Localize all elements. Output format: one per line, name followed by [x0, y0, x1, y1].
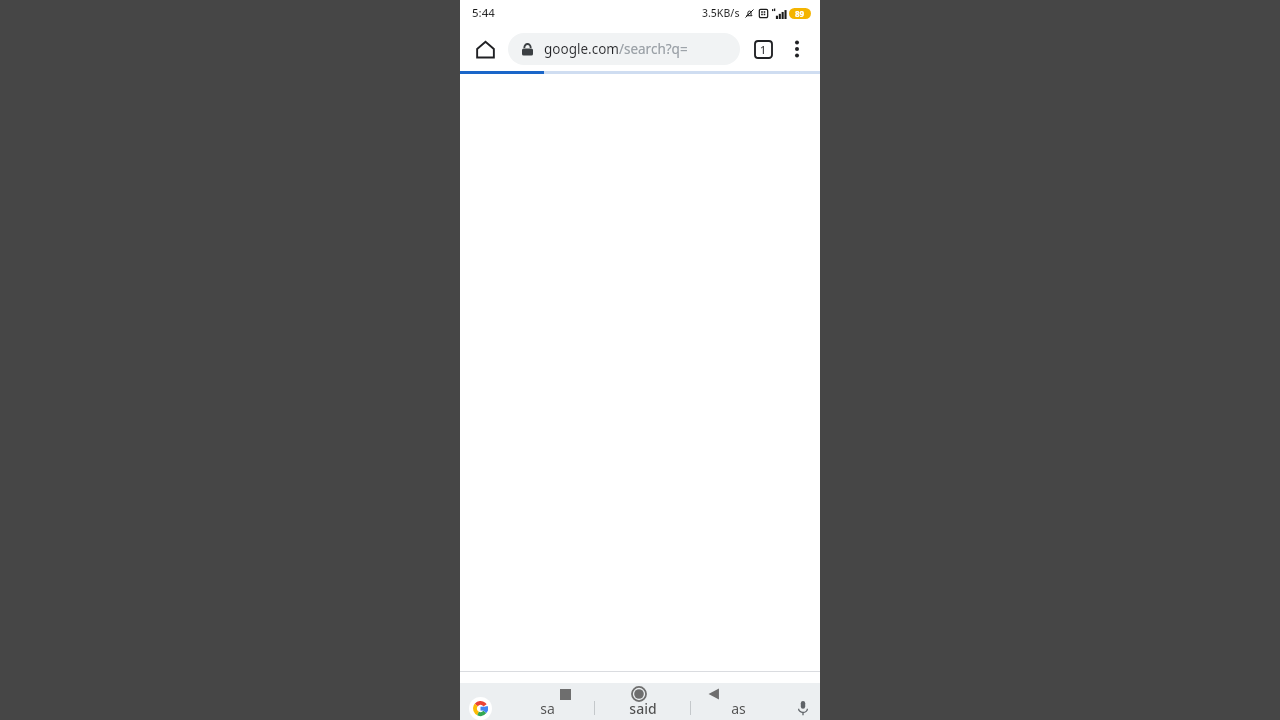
- button[interactable]: Home: [626, 683, 652, 705]
- button[interactable]: Home: [466, 30, 504, 68]
- button[interactable]: as: [691, 696, 786, 720]
- button[interactable]: google.com/search?q=: [508, 33, 740, 65]
- staticText: 3.5KB/s: [702, 6, 740, 20]
- staticText: as: [731, 699, 746, 718]
- staticText: said: [629, 699, 657, 718]
- button[interactable]: Back: [700, 683, 726, 705]
- staticText: 89: [795, 8, 805, 19]
- button[interactable]: Tabs: 1: [746, 32, 780, 66]
- staticText: 5:44: [472, 5, 495, 21]
- staticText: 1: [760, 43, 767, 57]
- button[interactable]: Voice input: [786, 696, 820, 720]
- button[interactable]: Recent apps: [552, 683, 578, 705]
- staticText: google.com/search?q=: [544, 40, 688, 58]
- button[interactable]: More options: [780, 32, 814, 66]
- staticText: sa: [540, 699, 555, 718]
- button[interactable]: Google: [460, 696, 500, 720]
- button[interactable]: sa: [500, 696, 594, 720]
- button[interactable]: said: [595, 696, 690, 720]
